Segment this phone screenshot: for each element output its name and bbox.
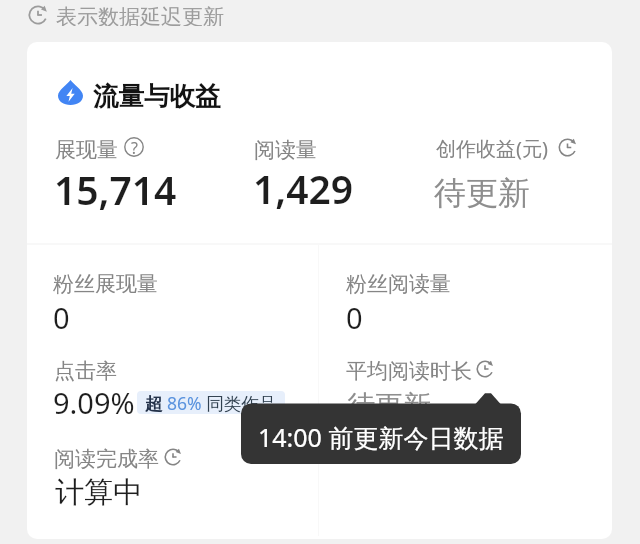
other: 延迟更新 xyxy=(476,360,494,378)
staticText: 14:00 前更新今日数据 xyxy=(258,420,504,454)
staticText: 阅读完成率 xyxy=(54,446,159,472)
other: 数据延迟更新说明 xyxy=(28,5,48,25)
staticText: 待更新 xyxy=(434,173,530,213)
staticText: 超 86% 同类作品 xyxy=(145,391,277,414)
button[interactable]: 14:00 前更新今日数据 xyxy=(241,391,521,464)
staticText: 1,429 xyxy=(253,162,354,215)
button[interactable]: 数据延迟更新说明 xyxy=(28,4,224,26)
staticText: 平均阅读时长 xyxy=(346,358,472,384)
staticText: 表示数据延迟更新 xyxy=(56,4,224,26)
other: 展现量说明 xyxy=(124,137,144,157)
staticText: 9.09% xyxy=(53,383,135,422)
staticText: 0 xyxy=(346,298,363,337)
staticText: 待更新 xyxy=(347,388,431,423)
staticText: 0 xyxy=(53,298,70,337)
staticText: 创作收益(元) xyxy=(436,135,548,162)
staticText: ? xyxy=(131,137,138,157)
staticText: 粉丝展现量 xyxy=(53,271,158,297)
staticText: 流量与收益 xyxy=(93,80,221,112)
other: 延迟更新 xyxy=(164,448,182,466)
button[interactable]: 超 86% 同类作品 xyxy=(137,391,285,414)
staticText: 15,714 xyxy=(54,163,177,216)
staticText: 展现量 xyxy=(55,137,118,163)
staticText: 阅读量 xyxy=(254,137,317,163)
staticText: 计算中 xyxy=(55,474,142,511)
staticText: 粉丝阅读量 xyxy=(346,271,451,297)
staticText: 点击率 xyxy=(54,358,117,384)
other: 延迟更新 xyxy=(558,138,577,157)
